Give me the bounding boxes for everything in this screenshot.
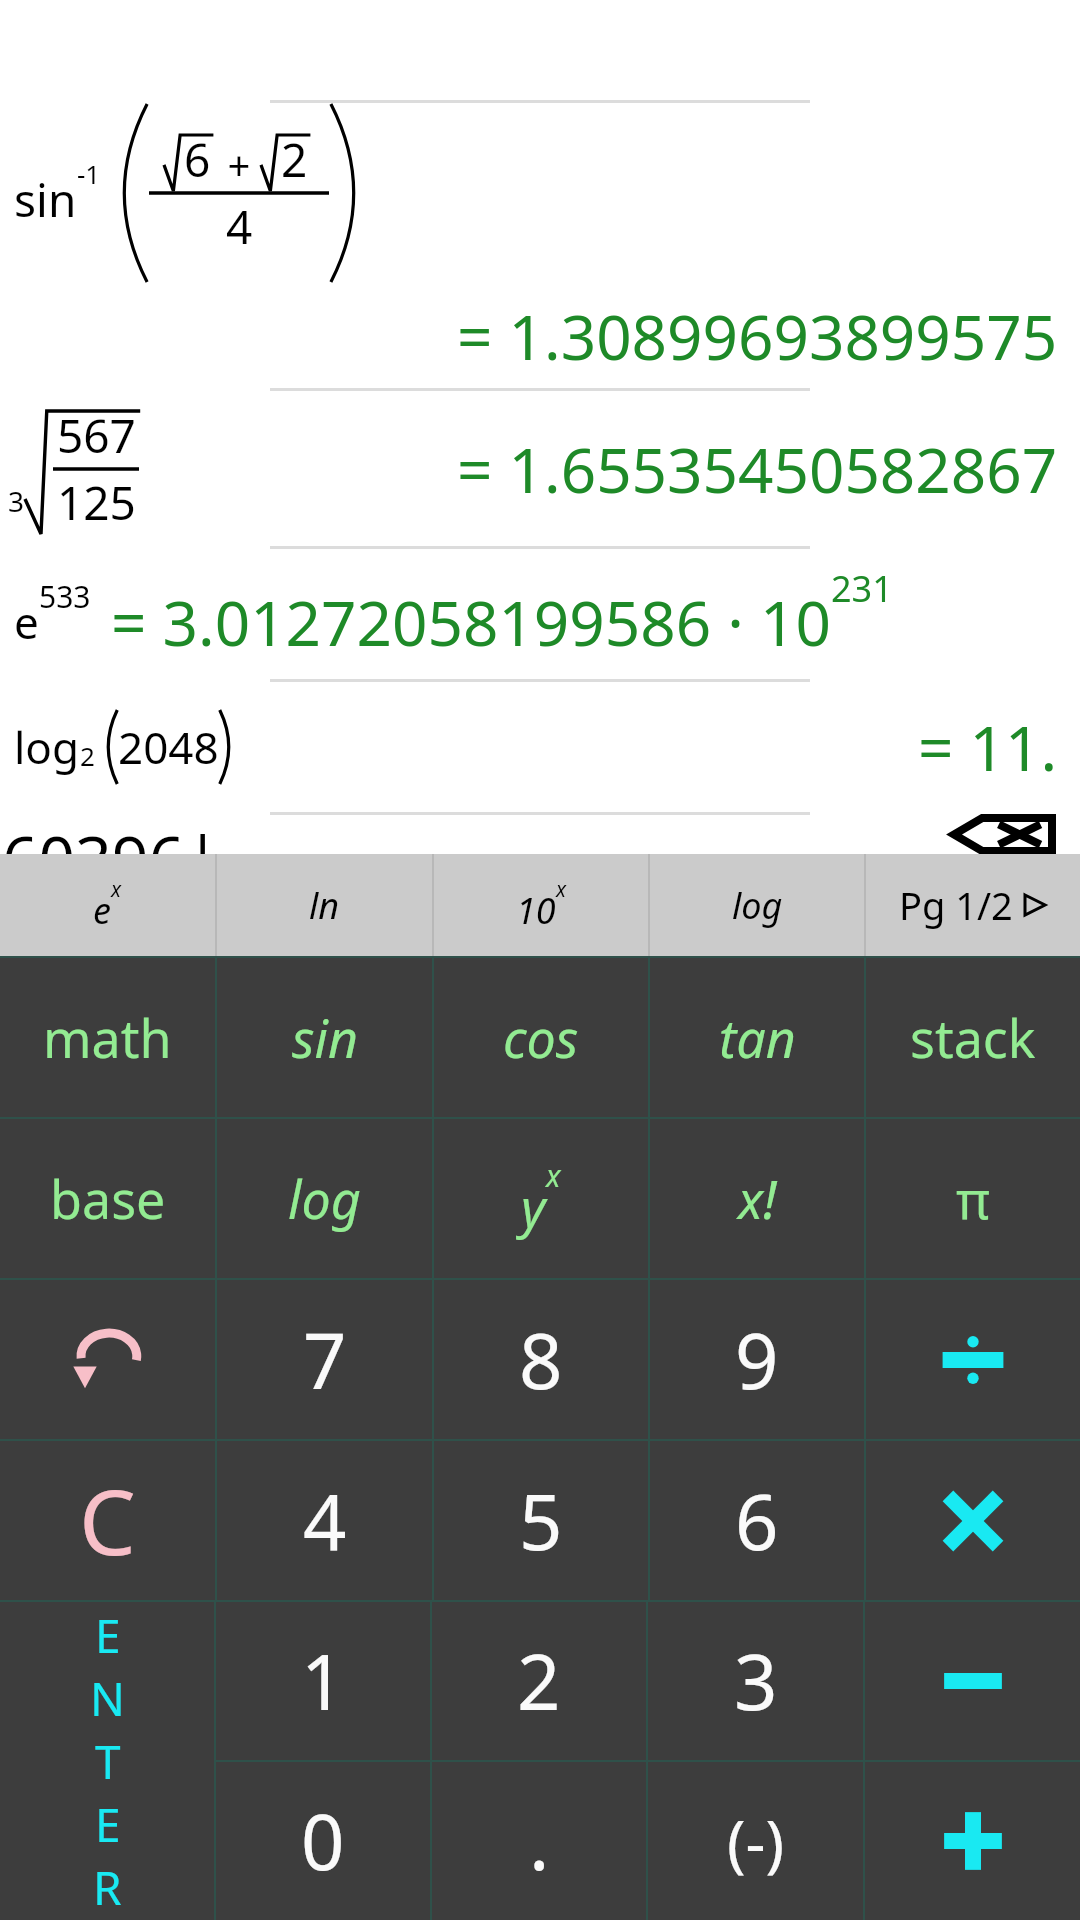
staticText: 2: [281, 128, 308, 191]
staticText: log: [732, 881, 783, 930]
button[interactable]: stack: [866, 958, 1080, 1117]
button[interactable]: Divide: [866, 1280, 1080, 1439]
button[interactable]: Plus: [865, 1762, 1080, 1920]
staticText: N: [90, 1667, 125, 1730]
staticText: base: [50, 1163, 166, 1234]
button[interactable]: 0: [216, 1762, 430, 1920]
staticText: E: [95, 1604, 121, 1667]
staticText: cos: [503, 1002, 579, 1073]
staticText: 4: [303, 1469, 347, 1573]
button[interactable]: .: [432, 1762, 646, 1920]
button[interactable]: Backspace: [948, 815, 1058, 854]
staticText: log: [288, 1163, 361, 1234]
button[interactable]: y: [434, 1119, 648, 1278]
button[interactable]: Pg 1/2: [866, 854, 1080, 956]
staticText: x: [111, 875, 122, 903]
button[interactable]: 1: [216, 1602, 430, 1760]
staticText: 7: [303, 1308, 347, 1412]
staticText: 231: [831, 564, 893, 613]
button[interactable]: 5: [434, 1441, 648, 1600]
staticText: .: [529, 1789, 550, 1893]
staticText: 567: [57, 404, 136, 467]
button[interactable]: 3: [648, 1602, 863, 1760]
button[interactable]: tan: [650, 958, 864, 1117]
staticText: 8: [519, 1308, 563, 1412]
button[interactable]: C: [0, 1441, 215, 1600]
staticText: 1: [301, 1629, 345, 1733]
staticText: x: [556, 875, 567, 903]
staticText: 3: [734, 1629, 778, 1733]
staticText: 125: [57, 471, 136, 534]
staticText: sin: [292, 1002, 358, 1073]
staticText: T: [95, 1730, 121, 1793]
staticText: stack: [910, 1002, 1036, 1073]
staticText: 533: [39, 576, 91, 617]
button[interactable]: 7: [217, 1280, 432, 1439]
staticText: 2: [80, 738, 95, 773]
button[interactable]: 2: [432, 1602, 646, 1760]
staticText: C: [79, 1459, 136, 1582]
staticText: 10: [516, 886, 556, 935]
staticText: log: [14, 717, 80, 777]
button[interactable]: 10: [434, 854, 648, 956]
staticText: 5: [519, 1469, 563, 1573]
staticText: π: [956, 1163, 990, 1234]
button[interactable]: Minus: [865, 1602, 1080, 1760]
button[interactable]: π: [866, 1119, 1080, 1278]
staticText: -1: [77, 156, 101, 191]
button[interactable]: cos: [434, 958, 648, 1117]
button[interactable]: Undo: [0, 1280, 215, 1439]
staticText: y: [521, 1171, 546, 1242]
staticText: Pg 1/2: [899, 879, 1013, 931]
staticText: e: [14, 592, 39, 652]
staticText: 60396|: [2, 815, 221, 854]
button[interactable]: log: [650, 854, 864, 956]
button[interactable]: base: [0, 1119, 215, 1278]
button[interactable]: E: [0, 1602, 214, 1920]
staticText: e: [93, 886, 111, 935]
button[interactable]: x!: [650, 1119, 864, 1278]
staticText: = 3.01272058199586 · 10: [111, 580, 831, 664]
staticText: 4: [226, 195, 253, 258]
staticText: 2: [517, 1629, 561, 1733]
staticText: 6: [184, 128, 211, 191]
staticText: 3: [8, 482, 25, 520]
button[interactable]: e: [0, 854, 215, 956]
staticText: E: [95, 1793, 121, 1856]
staticText: sin: [14, 168, 77, 231]
staticText: 0: [301, 1789, 345, 1893]
staticText: (-): [727, 1799, 785, 1883]
staticText: = 1.65535450582867: [457, 427, 1058, 511]
staticText: 9: [735, 1308, 779, 1412]
staticText: x: [546, 1155, 561, 1196]
button[interactable]: sin: [217, 958, 432, 1117]
button[interactable]: 4: [217, 1441, 432, 1600]
staticText: = 11.: [918, 705, 1058, 789]
button[interactable]: math: [0, 958, 215, 1117]
button[interactable]: ln: [217, 854, 432, 956]
staticText: math: [43, 1002, 172, 1073]
button[interactable]: Multiply: [866, 1441, 1080, 1600]
staticText: x!: [738, 1163, 777, 1234]
button[interactable]: 6: [650, 1441, 864, 1600]
staticText: 6: [735, 1469, 779, 1573]
button[interactable]: 9: [650, 1280, 864, 1439]
staticText: tan: [719, 1002, 796, 1073]
staticText: = 1.30899693899575: [457, 294, 1058, 378]
staticText: R: [93, 1856, 122, 1919]
staticText: +: [217, 137, 261, 191]
staticText: ln: [309, 881, 340, 930]
button[interactable]: 8: [434, 1280, 648, 1439]
staticText: 2048: [118, 717, 219, 777]
button[interactable]: log: [217, 1119, 432, 1278]
button[interactable]: (-): [648, 1762, 863, 1920]
